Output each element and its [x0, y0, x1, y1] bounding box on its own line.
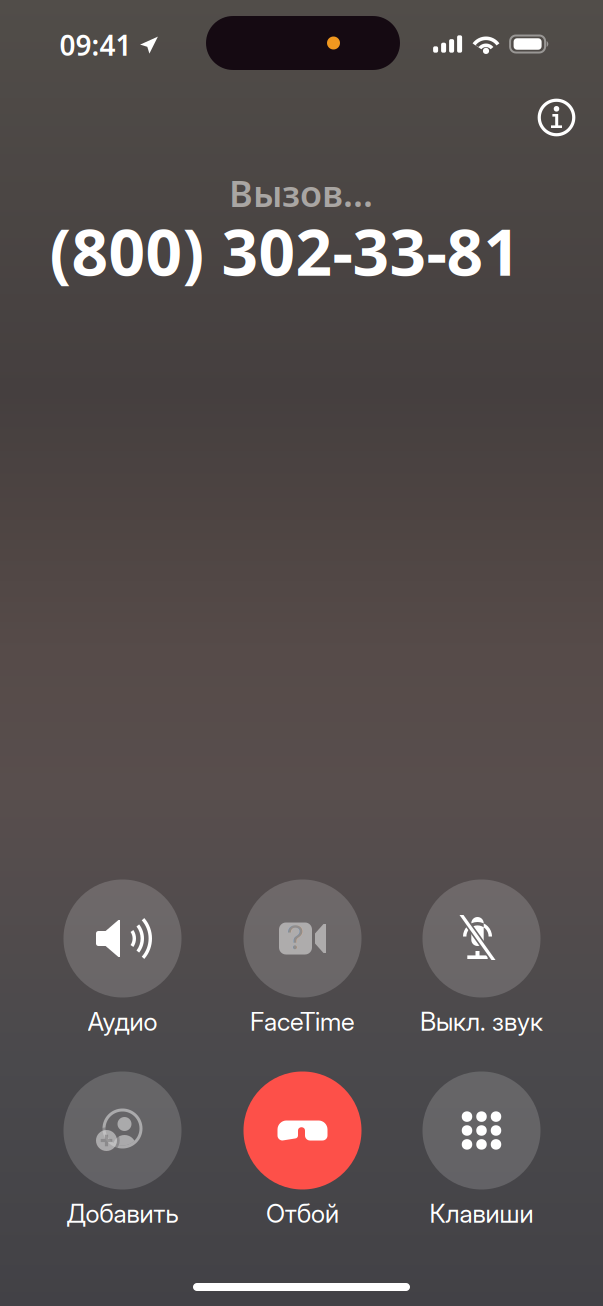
button[interactable]: Добавить	[38, 1071, 206, 1237]
button[interactable]: Клавиши	[397, 1071, 565, 1237]
staticText: Добавить	[66, 1198, 178, 1229]
staticText: (800) 302-33-81	[49, 208, 520, 293]
staticText: FaceTime	[250, 1006, 355, 1037]
staticText: Аудио	[87, 1006, 157, 1037]
staticText: Вызов...	[229, 169, 373, 217]
staticText: Выкл. звук	[420, 1006, 543, 1037]
staticText: ?	[287, 918, 304, 957]
staticText: Отбой	[266, 1198, 339, 1229]
staticText: 09:41	[59, 26, 131, 64]
button[interactable]: Аудио	[38, 879, 206, 1045]
button[interactable]: Выкл. звук	[397, 879, 565, 1045]
staticText: Клавиши	[429, 1198, 533, 1229]
button[interactable]: ?	[218, 879, 386, 1045]
button[interactable]: Call info	[532, 93, 580, 141]
button[interactable]: Отбой	[218, 1071, 386, 1237]
